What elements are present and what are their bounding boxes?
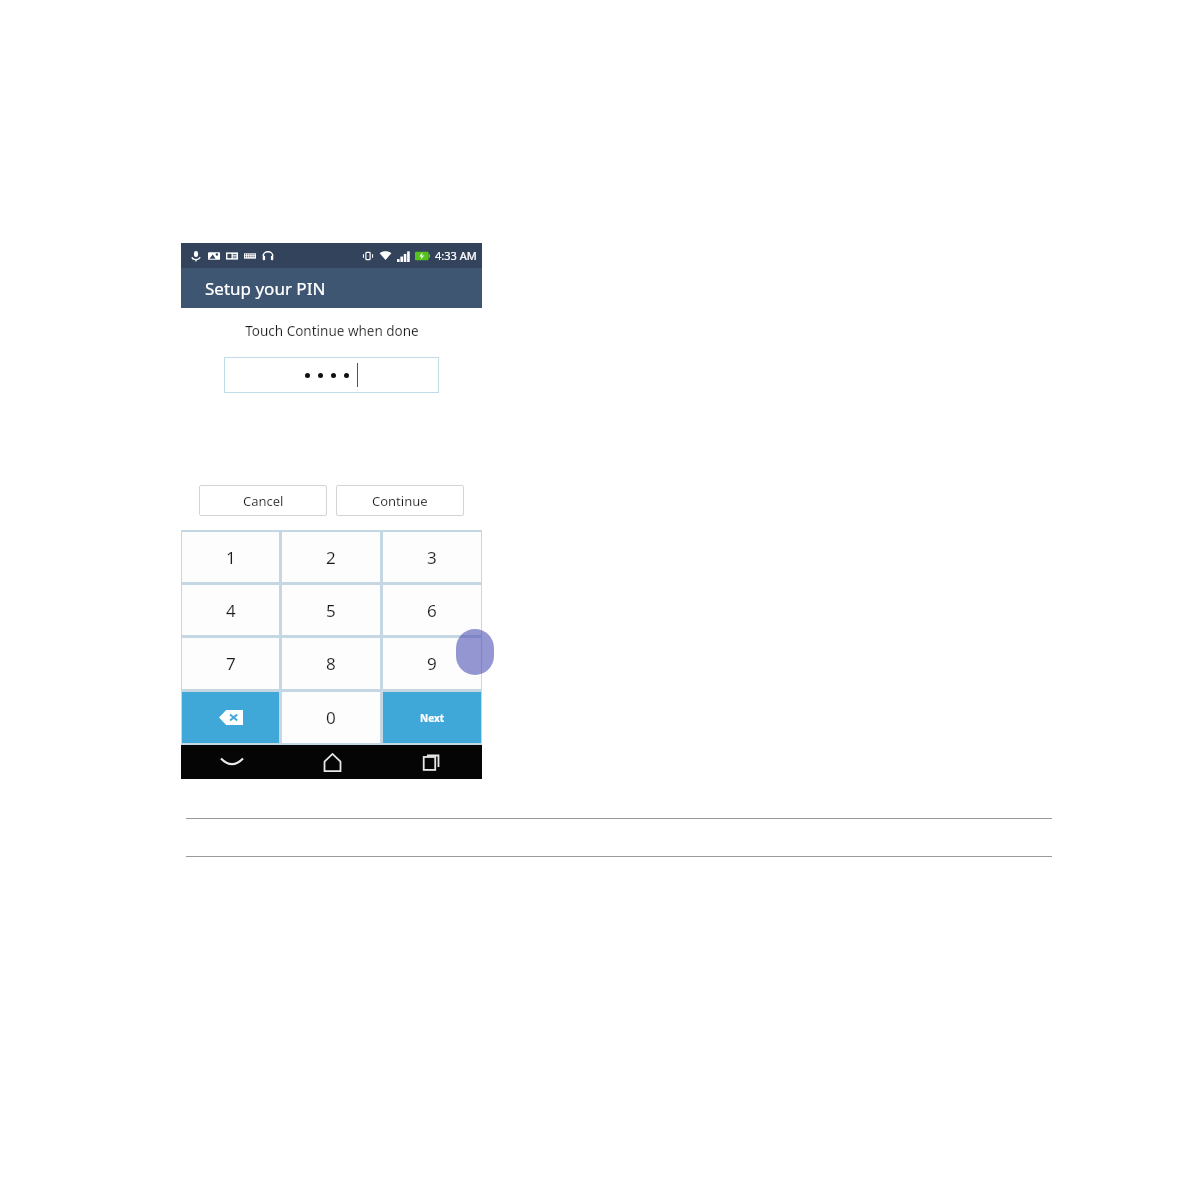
staticText: 9 <box>427 652 437 675</box>
staticText: 7 <box>226 652 236 675</box>
button[interactable] <box>224 357 439 393</box>
staticText: 3 <box>427 546 437 569</box>
button[interactable]: Back <box>181 745 282 779</box>
button[interactable]: Home <box>282 745 382 779</box>
button[interactable]: 7 <box>182 638 279 689</box>
staticText: 8 <box>326 652 336 675</box>
button[interactable]: 5 <box>282 585 380 635</box>
staticText: 4:33 AM <box>435 248 477 263</box>
button[interactable]: 8 <box>282 638 380 689</box>
button[interactable]: Continue <box>336 485 464 516</box>
staticText: 5 <box>326 599 336 622</box>
button[interactable]: 2 <box>282 532 380 582</box>
staticText: 0 <box>326 706 336 729</box>
button[interactable]: 0 <box>282 692 380 743</box>
staticText: 4 <box>226 599 236 622</box>
staticText: Next <box>420 711 445 725</box>
button[interactable]: Next <box>383 692 481 743</box>
staticText: 1 <box>226 546 236 569</box>
staticText: Continue <box>372 492 428 510</box>
staticText: 6 <box>427 599 437 622</box>
button[interactable]: 1 <box>182 532 279 582</box>
staticText: 2 <box>326 546 336 569</box>
button[interactable]: 4 <box>182 585 279 635</box>
button[interactable]: Cancel <box>199 485 327 516</box>
staticText: Setup your PIN <box>205 277 326 300</box>
button[interactable]: 6 <box>383 585 481 635</box>
button[interactable]: 3 <box>383 532 481 582</box>
button[interactable]: Backspace <box>182 692 279 743</box>
staticText: Cancel <box>243 492 284 510</box>
button[interactable]: 9 <box>383 638 481 689</box>
staticText: Touch Continue when done <box>245 322 419 340</box>
button[interactable]: Recents <box>382 745 482 779</box>
